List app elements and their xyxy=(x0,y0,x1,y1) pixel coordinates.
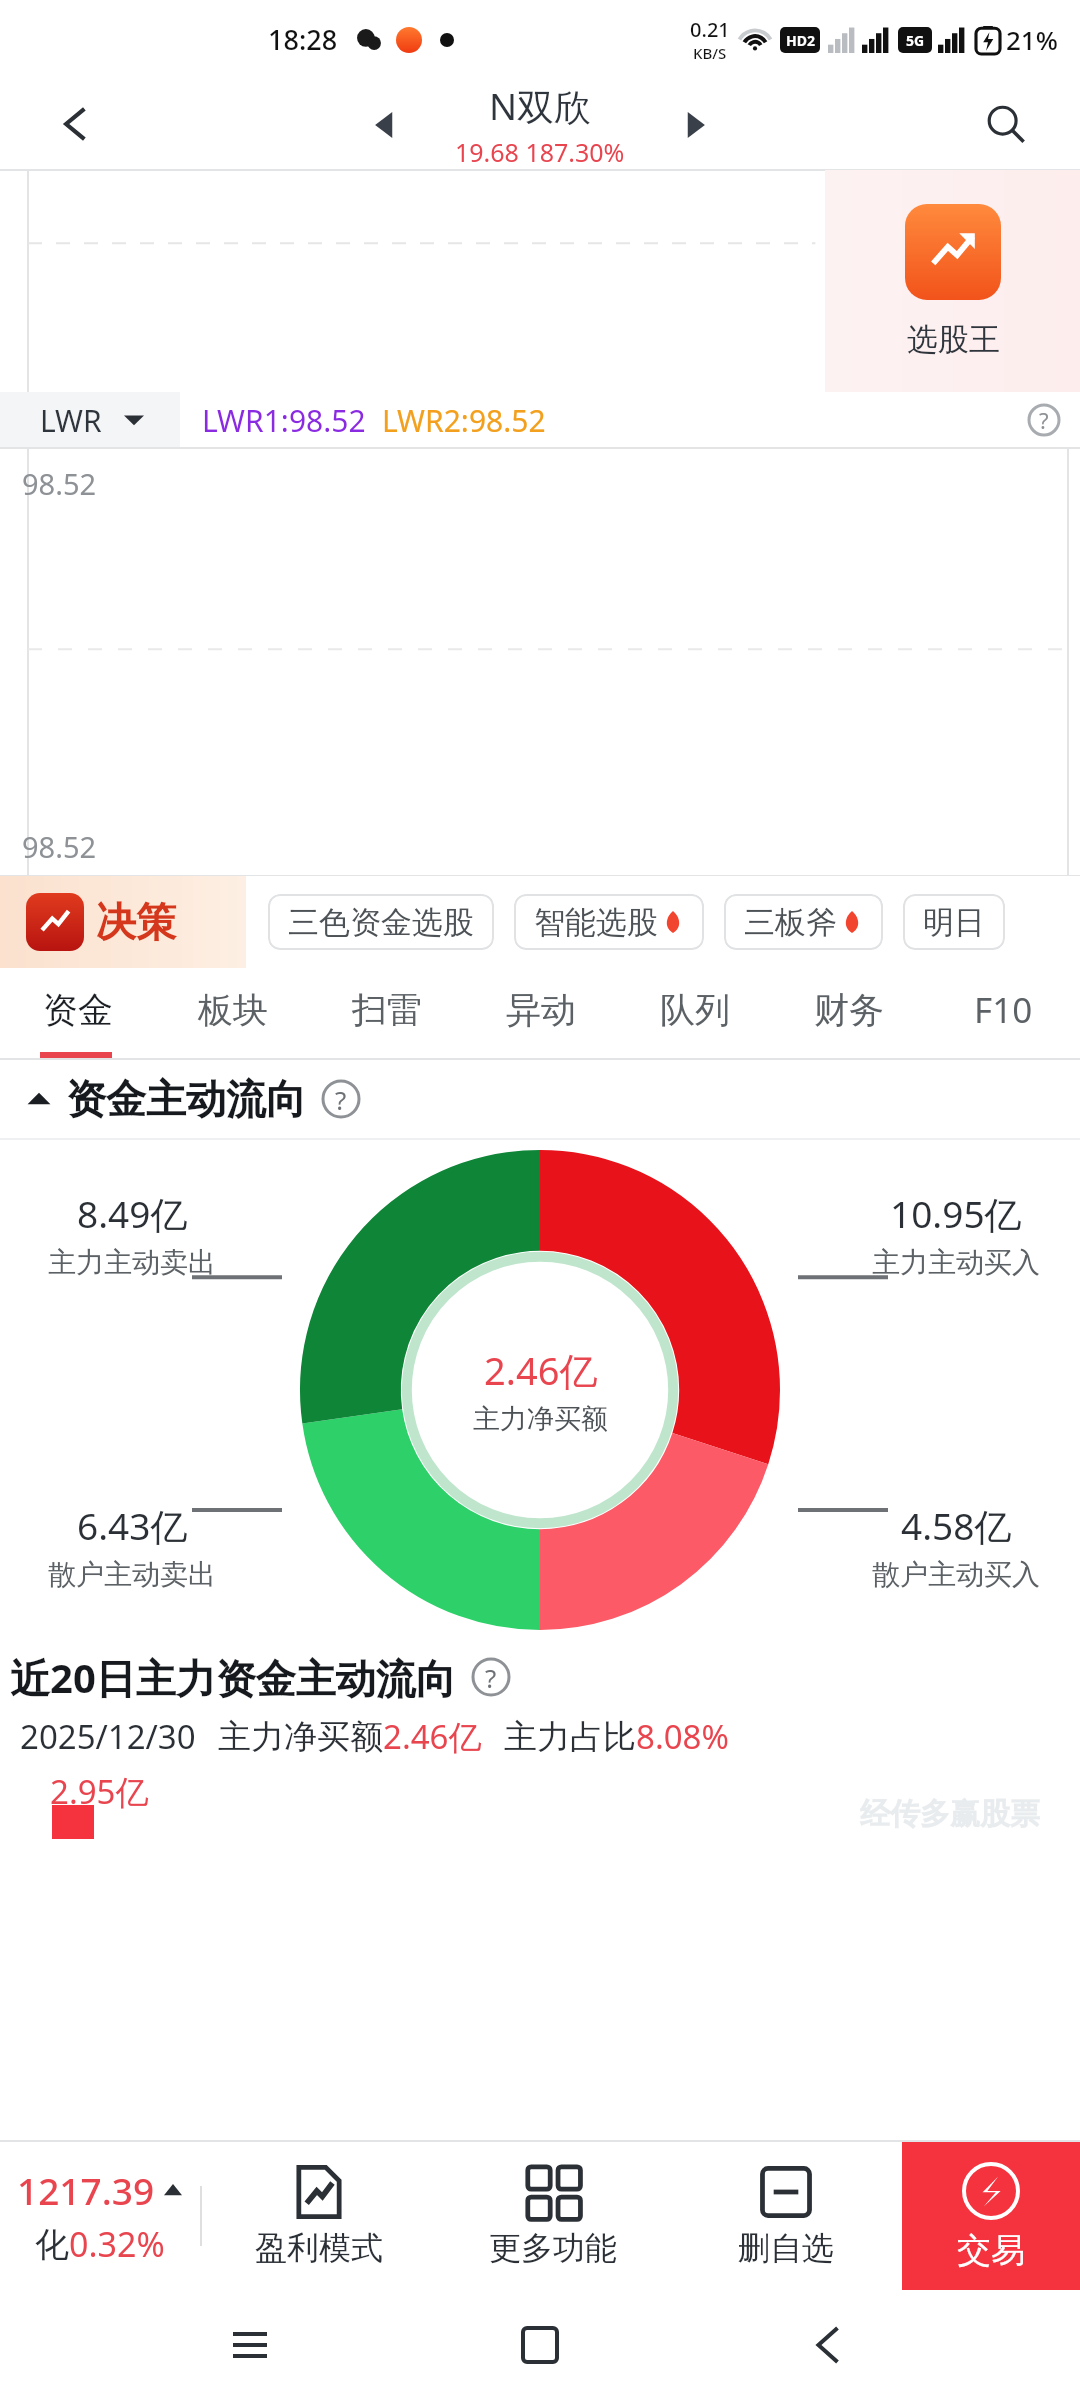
button[interactable]: Recents xyxy=(210,2305,290,2385)
button[interactable]: 智能选股 xyxy=(514,894,704,950)
staticText: 经传多赢股票 xyxy=(860,1795,1040,1833)
button[interactable]: 删自选 xyxy=(669,2142,902,2290)
button[interactable]: 扫雷 xyxy=(310,968,464,1052)
staticText: 主力占比 xyxy=(504,1716,636,1758)
staticText: 8.49亿 xyxy=(77,1188,188,1239)
staticText: 决策 xyxy=(96,897,176,947)
staticText: 队列 xyxy=(660,988,730,1032)
staticText: 散户主动买入 xyxy=(872,1557,1040,1592)
staticText: 2025/12/30 xyxy=(20,1714,196,1759)
staticText: 18:28 xyxy=(268,21,338,58)
button[interactable]: 盈利模式 xyxy=(202,2142,436,2290)
button[interactable]: Previous stock xyxy=(359,99,411,151)
staticText: 主力主动买入 xyxy=(872,1245,1040,1280)
staticText: ? xyxy=(1039,405,1049,435)
button[interactable]: 队列 xyxy=(618,968,772,1052)
staticText: 交易 xyxy=(957,2229,1025,2272)
staticText: 4.58亿 xyxy=(901,1500,1012,1551)
staticText: 智能选股 xyxy=(534,903,658,942)
button[interactable]: F10 xyxy=(926,968,1080,1052)
staticText: ? xyxy=(335,1082,347,1117)
staticText: 10.95亿 xyxy=(890,1188,1022,1239)
staticText: 财务 xyxy=(814,988,884,1032)
staticText: 异动 xyxy=(506,988,576,1032)
staticText: 主力主动卖出 xyxy=(48,1245,216,1280)
button[interactable]: Help xyxy=(1022,398,1066,442)
button[interactable]: 异动 xyxy=(464,968,618,1052)
button[interactable]: LWR xyxy=(0,392,180,448)
button[interactable]: 明日 xyxy=(903,894,1005,950)
staticText: HD2 xyxy=(786,31,815,50)
staticText: 0.32% xyxy=(69,2221,165,2267)
staticText: 2.46亿 xyxy=(484,1344,598,1396)
staticText: 2.46亿 xyxy=(383,1714,482,1759)
button[interactable]: 更多功能 xyxy=(436,2142,669,2290)
staticText: 三板斧 xyxy=(744,903,837,942)
staticText: 资金主动流向 xyxy=(66,1074,306,1124)
staticText: 5G xyxy=(906,31,925,50)
button[interactable]: 选股王 xyxy=(825,170,1080,392)
staticText: 6.43亿 xyxy=(77,1500,188,1551)
staticText: 98.52 xyxy=(22,827,97,866)
staticText: 更多功能 xyxy=(489,2228,617,2268)
staticText: 删自选 xyxy=(738,2228,834,2268)
staticText: 主力净买额 xyxy=(218,1716,383,1758)
staticText: 8.08% xyxy=(636,1714,729,1759)
staticText: 盈利模式 xyxy=(255,2228,383,2268)
staticText: 0.21 xyxy=(690,16,730,43)
staticText: 资金 xyxy=(43,988,113,1032)
button[interactable]: 决策 xyxy=(0,876,246,968)
button[interactable]: Home xyxy=(500,2305,580,2385)
staticText: 明日 xyxy=(923,903,985,942)
staticText: LWR1:98.52 xyxy=(202,400,366,441)
button[interactable]: 1217.39 xyxy=(0,2142,200,2290)
staticText: 19.68 187.30% xyxy=(455,135,625,169)
staticText: 98.52 xyxy=(22,464,97,503)
button[interactable]: Back xyxy=(790,2305,870,2385)
staticText: 板块 xyxy=(198,988,268,1032)
button[interactable]: Search xyxy=(974,92,1038,156)
button[interactable]: Help xyxy=(320,1078,362,1120)
staticText: LWR xyxy=(40,400,102,441)
staticText: 2.95亿 xyxy=(50,1769,149,1814)
button[interactable]: 三色资金选股 xyxy=(268,894,494,950)
button[interactable]: 交易 xyxy=(902,2142,1080,2290)
staticText: 扫雷 xyxy=(352,988,422,1032)
button[interactable]: 财务 xyxy=(772,968,926,1052)
staticText: 近20日主力资金主动流向 xyxy=(10,1650,456,1705)
staticText: 21% xyxy=(1006,22,1058,57)
staticText: 化 xyxy=(35,2223,69,2266)
staticText: 选股王 xyxy=(907,320,1000,359)
button[interactable]: Next stock xyxy=(669,99,721,151)
button[interactable]: 三板斧 xyxy=(724,894,883,950)
button[interactable]: 近20日主力资金主动流向 xyxy=(0,1640,1080,1714)
staticText: 主力净买额 xyxy=(473,1402,608,1436)
staticText: 三色资金选股 xyxy=(288,903,474,942)
button[interactable]: Help xyxy=(470,1656,512,1698)
button[interactable]: 资金 xyxy=(0,968,155,1052)
staticText: F10 xyxy=(974,986,1033,1034)
staticText: KB/S xyxy=(693,43,727,63)
staticText: 1217.39 xyxy=(17,2165,155,2215)
button[interactable]: Back xyxy=(44,92,108,156)
button[interactable]: 板块 xyxy=(155,968,310,1052)
staticText: ? xyxy=(485,1660,497,1695)
staticText: 散户主动卖出 xyxy=(48,1557,216,1592)
staticText: LWR2:98.52 xyxy=(382,400,546,441)
button[interactable]: 资金主动流向 xyxy=(0,1060,1080,1138)
staticText: N双欣 xyxy=(489,80,592,131)
